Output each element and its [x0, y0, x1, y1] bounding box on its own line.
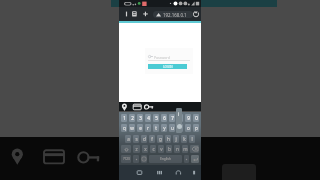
staticText: q [123, 125, 126, 131]
staticText: y [163, 125, 166, 131]
staticText: x [144, 146, 147, 152]
staticText: English [160, 157, 171, 161]
button[interactable]: x [142, 145, 148, 153]
button[interactable]: s [133, 135, 139, 143]
button[interactable]: Shift [121, 145, 131, 153]
button[interactable]: d [141, 135, 147, 143]
button[interactable]: t [153, 124, 159, 132]
staticText: u [171, 125, 174, 131]
staticText: 1 [123, 115, 126, 121]
button[interactable]: Emoji [141, 155, 147, 163]
button[interactable]: u [169, 124, 175, 132]
staticText: b [168, 146, 171, 152]
staticText: 0 [195, 115, 198, 121]
button[interactable]: Voice input [133, 155, 139, 163]
button[interactable]: 1 [121, 114, 127, 122]
button[interactable]: 7 [169, 114, 175, 122]
staticText: a [127, 136, 130, 142]
button[interactable]: 6 [161, 114, 167, 122]
staticText: h [167, 136, 170, 142]
button[interactable]: ?123 [121, 155, 131, 163]
button[interactable]: y [161, 124, 167, 132]
button[interactable]: 0 [193, 114, 199, 122]
button[interactable]: a [125, 135, 131, 143]
staticText: g [159, 136, 162, 142]
staticText: c [152, 146, 155, 152]
staticText: m [183, 146, 188, 152]
staticText: i [178, 110, 180, 117]
button[interactable]: r [145, 124, 151, 132]
staticText: 9 [187, 115, 190, 121]
button[interactable]: b [166, 145, 172, 153]
button[interactable]: h [165, 135, 171, 143]
staticText: l [191, 136, 193, 142]
button[interactable]: 3 [137, 114, 143, 122]
staticText: s [135, 136, 138, 142]
button[interactable]: g [157, 135, 163, 143]
button[interactable]: v [158, 145, 164, 153]
button[interactable]: e [137, 124, 143, 132]
button[interactable]: c [150, 145, 156, 153]
button[interactable]: q [121, 124, 127, 132]
button[interactable]: z [133, 145, 140, 153]
button[interactable]: f [149, 135, 155, 143]
button[interactable]: Enter [191, 155, 199, 163]
staticText: j [175, 136, 177, 142]
staticText: v [160, 146, 163, 152]
staticText: o [187, 125, 190, 131]
staticText: r [147, 125, 149, 131]
staticText: 5 [155, 115, 158, 121]
staticText: LOGIN [163, 65, 173, 69]
button[interactable]: 9 [185, 114, 191, 122]
button[interactable]: 8 [177, 114, 183, 122]
staticText: t [155, 125, 157, 131]
button[interactable]: n [174, 145, 180, 153]
staticText: 7 [171, 115, 174, 121]
staticText: e [139, 125, 142, 131]
button[interactable]: LOGIN [148, 64, 187, 69]
staticText: d [143, 136, 146, 142]
button[interactable]: Backspace [190, 145, 199, 153]
button[interactable]: m [182, 145, 188, 153]
button[interactable]: English [149, 155, 182, 163]
button[interactable]: k [181, 135, 187, 143]
staticText: z [135, 146, 138, 152]
button[interactable]: w [129, 124, 135, 132]
button[interactable]: o [185, 124, 191, 132]
staticText: p [195, 125, 198, 131]
button[interactable]: l [189, 135, 195, 143]
staticText: n [176, 146, 179, 152]
button[interactable]: j [173, 135, 179, 143]
staticText: 3 [139, 115, 142, 121]
button[interactable]: Address bar 192.168.0.1 [153, 11, 193, 18]
staticText: f [151, 136, 153, 142]
button[interactable]: 4 [145, 114, 151, 122]
button[interactable]: Period [184, 155, 189, 163]
button[interactable]: p [193, 124, 199, 132]
button[interactable]: 2 [129, 114, 135, 122]
staticText: 192.168.0.1 [163, 12, 187, 18]
button[interactable]: i [177, 124, 183, 132]
staticText: 6 [163, 115, 166, 121]
staticText: k [183, 136, 186, 142]
button[interactable]: 5 [153, 114, 159, 122]
staticText: Password [154, 55, 170, 60]
staticText: 2 [131, 115, 134, 121]
staticText: 4 [147, 115, 150, 121]
staticText: w [130, 125, 134, 131]
staticText: i [179, 125, 181, 131]
staticText: ?123 [123, 157, 130, 161]
